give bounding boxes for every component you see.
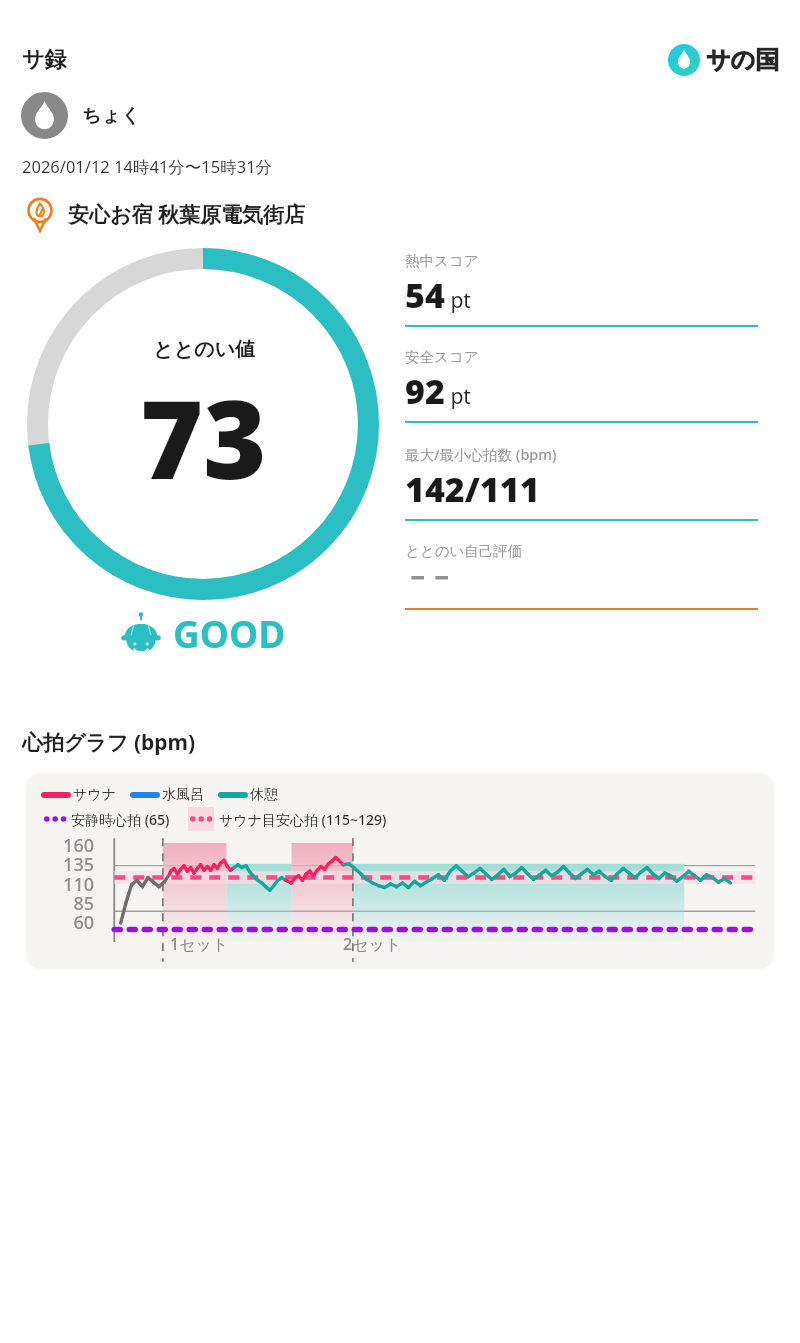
staticText: 92 xyxy=(405,368,445,414)
staticText: 142/111 xyxy=(405,466,540,512)
button[interactable]: 安心お宿 秋葉原電気街店 xyxy=(22,196,305,232)
button[interactable]: 最大/最小心拍数 (bpm) xyxy=(405,436,758,534)
staticText: 2026/01/12 14時41分〜15時31分 xyxy=(22,155,273,178)
button[interactable]: 熱中スコア xyxy=(405,244,758,340)
staticText: ととのい自己評価 xyxy=(405,542,523,560)
staticText: GOOD xyxy=(173,608,286,658)
staticText: 54 xyxy=(405,272,445,318)
staticText: 安心お宿 秋葉原電気街店 xyxy=(68,200,305,229)
staticText: ちょく xyxy=(82,104,141,128)
staticText: 160 xyxy=(28,833,94,858)
staticText: 休憩 xyxy=(250,786,278,804)
button[interactable]: ととのい自己評価 xyxy=(405,534,758,623)
staticText: サウナ目安心拍 (115~129) xyxy=(219,810,387,829)
button[interactable]: サウナ xyxy=(26,773,774,969)
button[interactable]: ちょく xyxy=(21,92,141,139)
button[interactable]: 安全スコア xyxy=(405,340,758,436)
staticText: 安静時心拍 (65) xyxy=(71,810,170,829)
staticText: 1セット xyxy=(170,933,229,955)
staticText: 85 xyxy=(28,891,94,916)
staticText: 安全スコア xyxy=(405,348,479,366)
staticText: pt xyxy=(445,286,471,315)
staticText: 73 xyxy=(140,364,267,511)
staticText: サ録 xyxy=(22,46,67,74)
staticText: 最大/最小心拍数 (bpm) xyxy=(405,444,557,464)
button[interactable]: GOOD xyxy=(119,608,286,658)
staticText: 2セット xyxy=(343,933,402,955)
staticText: サの国 xyxy=(706,45,780,75)
staticText: 心拍グラフ (bpm) xyxy=(22,728,196,757)
staticText: 110 xyxy=(28,872,94,897)
staticText: pt xyxy=(445,382,471,411)
staticText: 60 xyxy=(28,910,94,935)
staticText: 熱中スコア xyxy=(405,252,479,270)
staticText: －－ xyxy=(405,562,453,592)
staticText: 135 xyxy=(28,852,94,877)
staticText: ととのい値 xyxy=(153,337,255,362)
staticText: サウナ xyxy=(73,786,116,804)
button[interactable]: サの国 ロゴ xyxy=(668,44,780,76)
staticText: 水風呂 xyxy=(162,786,204,804)
